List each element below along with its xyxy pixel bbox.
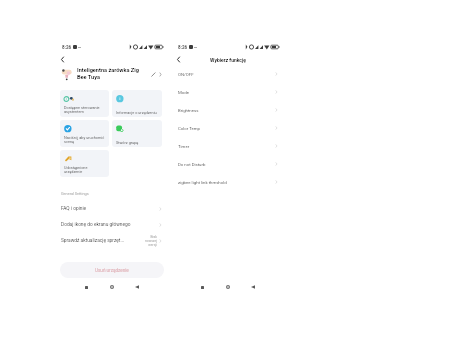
button[interactable]: Sprawdź aktualizację sprzęt... — [58, 233, 165, 249]
button[interactable]: Informacje o urządzeniu — [112, 90, 162, 117]
staticText: zigbee light link threshold — [178, 180, 275, 185]
button[interactable]: Back — [173, 54, 183, 64]
staticText: 8:26 — [62, 45, 72, 50]
staticText: Sprawdź aktualizację sprzęt... — [61, 238, 142, 244]
button[interactable]: Timer — [174, 137, 281, 155]
button[interactable]: ON/OFF — [174, 65, 281, 83]
button[interactable]: Mode — [174, 83, 281, 101]
button[interactable]: Home — [215, 280, 240, 294]
staticText: Wybierz funkcję — [210, 57, 246, 63]
button[interactable]: Brightness — [174, 101, 281, 119]
staticText: 8:26 — [178, 45, 188, 50]
staticText: ON/OFF — [178, 72, 275, 77]
staticText: Timer — [178, 144, 275, 149]
staticText: Stwórz grupę — [116, 140, 139, 144]
staticText: Bee Tuya — [77, 74, 101, 81]
staticText: Informacje o urządzeniu — [116, 110, 157, 114]
button[interactable]: Dodaj ikonę do ekranu głównego — [58, 217, 165, 233]
button[interactable]: Inteligentna żarówka Zig — [58, 64, 165, 84]
button[interactable]: Recents — [190, 280, 215, 294]
button[interactable]: Naciśnij, aby uruchomić scenę — [60, 120, 109, 147]
button[interactable]: Back — [124, 280, 149, 294]
staticText: Usuń urządzenie — [95, 268, 129, 273]
button[interactable]: Stwórz grupę — [112, 120, 162, 147]
button[interactable]: Edit — [149, 70, 157, 78]
staticText: Dostępne sterowanie asystentem — [64, 105, 106, 114]
staticText: Inteligentna żarówka Zig — [77, 67, 139, 74]
staticText: Naciśnij, aby uruchomić scenę — [64, 135, 106, 144]
button[interactable]: FAQ i opinie — [58, 201, 165, 217]
button[interactable]: Recents — [74, 280, 99, 294]
staticText: Dodaj ikonę do ekranu głównego — [61, 222, 157, 228]
button[interactable]: Udostępnione urządzenie — [60, 150, 109, 177]
staticText: Do not Disturb — [178, 162, 275, 167]
staticText: Color Temp — [178, 126, 275, 131]
button[interactable]: Usuń urządzenie — [60, 262, 164, 278]
button[interactable]: zigbee light link threshold — [174, 173, 281, 191]
staticText: Brak nowszej wersji — [142, 235, 157, 247]
button[interactable]: Dostępne sterowanie asystentem — [60, 90, 109, 117]
staticText: Brightness — [178, 108, 275, 113]
button[interactable]: Color Temp — [174, 119, 281, 137]
button[interactable]: Do not Disturb — [174, 155, 281, 173]
staticText: Udostępnione urządzenie — [64, 165, 106, 174]
staticText: Mode — [178, 90, 275, 95]
button[interactable]: Back — [240, 280, 265, 294]
staticText: General Settings — [61, 191, 89, 195]
button[interactable]: Home — [99, 280, 124, 294]
button[interactable]: Back — [57, 54, 67, 64]
staticText: FAQ i opinie — [61, 206, 157, 212]
